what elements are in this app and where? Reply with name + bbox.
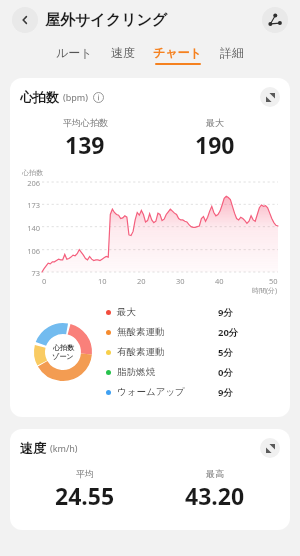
staticText: 20: [137, 276, 146, 286]
button[interactable]: Expand: [260, 87, 280, 107]
staticText: ルート: [56, 45, 93, 60]
staticText: 0分: [218, 366, 233, 379]
staticText: 最高: [206, 468, 224, 479]
staticText: ウォームアップ: [117, 386, 185, 398]
staticText: 屋外サイクリング: [45, 11, 168, 30]
staticText: 139: [65, 129, 105, 160]
staticText: (bpm): [63, 91, 88, 103]
button[interactable]: 速度: [109, 45, 137, 65]
staticText: 206: [20, 178, 40, 188]
button[interactable]: 最大: [106, 302, 276, 322]
staticText: 心拍数: [22, 168, 43, 177]
staticText: 詳細: [220, 45, 244, 60]
button[interactable]: Expand: [260, 438, 280, 458]
staticText: 有酸素運動: [117, 346, 165, 358]
button[interactable]: 速度: [10, 429, 290, 530]
staticText: チャート: [153, 45, 202, 60]
button[interactable]: 詳細: [218, 45, 246, 65]
button[interactable]: ルート: [54, 45, 95, 65]
staticText: 心拍数: [20, 89, 59, 105]
staticText: 106: [20, 246, 40, 256]
staticText: 時間(分): [252, 286, 278, 296]
staticText: 50: [269, 276, 278, 286]
staticText: 平均心拍数: [63, 117, 108, 128]
staticText: 20分: [218, 326, 239, 339]
staticText: 43.20: [185, 480, 245, 511]
staticText: 最大: [117, 306, 136, 318]
staticText: 24.55: [55, 480, 115, 511]
button[interactable]: ウォームアップ: [106, 382, 276, 402]
staticText: 190: [195, 129, 235, 160]
button[interactable]: 脂肪燃焼: [106, 362, 276, 382]
staticText: 最大: [206, 117, 224, 128]
staticText: 速度: [20, 440, 46, 456]
staticText: 9分: [218, 386, 233, 399]
staticText: 73: [20, 268, 40, 278]
staticText: 脂肪燃焼: [117, 366, 155, 378]
button[interactable]: Info: [93, 92, 104, 103]
button[interactable]: 無酸素運動: [106, 322, 276, 342]
staticText: 心拍数: [53, 343, 74, 352]
staticText: 速度: [111, 45, 135, 60]
staticText: 40: [215, 276, 224, 286]
button[interactable]: 心拍数: [10, 78, 290, 417]
staticText: 30: [176, 276, 185, 286]
staticText: 140: [20, 223, 40, 233]
staticText: 9分: [218, 306, 233, 319]
staticText: 173: [20, 200, 40, 210]
staticText: 10: [98, 276, 107, 286]
staticText: 無酸素運動: [117, 326, 165, 338]
button[interactable]: 有酸素運動: [106, 342, 276, 362]
staticText: ゾーン: [52, 352, 74, 361]
staticText: (km/h): [50, 442, 78, 454]
staticText: 0: [42, 276, 47, 286]
button[interactable]: チャート: [151, 45, 204, 65]
button[interactable]: Share: [262, 7, 288, 33]
button[interactable]: Back: [12, 7, 38, 33]
staticText: 平均: [76, 468, 94, 479]
staticText: 5分: [218, 346, 233, 359]
